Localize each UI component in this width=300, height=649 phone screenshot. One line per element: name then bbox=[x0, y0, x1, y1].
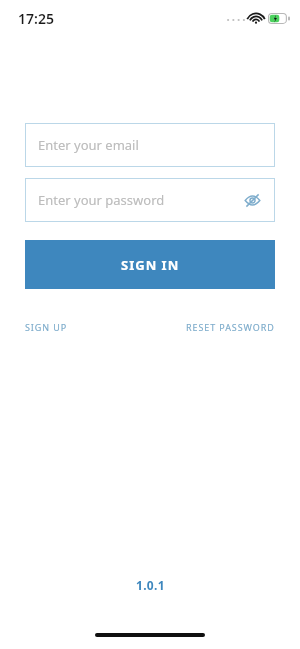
button[interactable]: Enter your email bbox=[25, 123, 275, 167]
staticText: 17:25 bbox=[18, 9, 54, 28]
button[interactable]: Enter your password bbox=[25, 178, 275, 222]
button[interactable]: SIGN IN bbox=[25, 240, 275, 289]
staticText: SIGN UP bbox=[25, 321, 68, 333]
button[interactable]: Show password bbox=[241, 189, 263, 211]
staticText: SIGN IN bbox=[121, 256, 180, 274]
button[interactable]: RESET PASSWORD bbox=[186, 317, 275, 337]
staticText: RESET PASSWORD bbox=[186, 321, 275, 333]
staticText: 1.0.1 bbox=[136, 577, 165, 593]
staticText: Enter your password bbox=[38, 191, 165, 209]
staticText: Enter your email bbox=[38, 136, 139, 154]
button[interactable]: SIGN UP bbox=[25, 317, 68, 337]
